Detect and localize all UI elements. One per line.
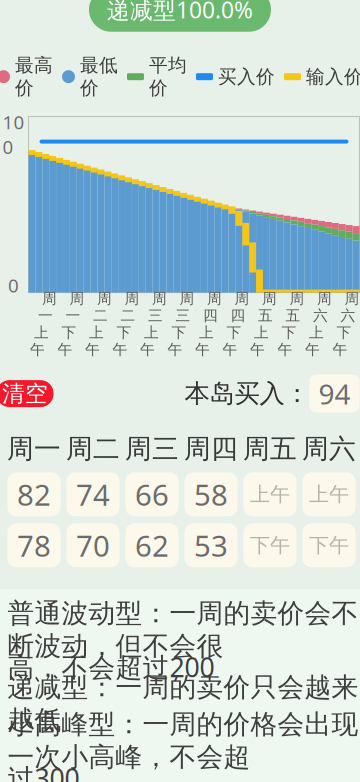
staticText: 午 (140, 341, 155, 359)
staticText: 过300 (7, 760, 79, 782)
staticText: 上午 (309, 482, 349, 507)
staticText: 周五 (243, 433, 297, 465)
staticText: 100 (2, 110, 24, 159)
staticText: 六 (313, 307, 328, 325)
staticText: 82 (17, 475, 51, 514)
staticText: 上 (34, 324, 49, 342)
staticText: 六 (340, 307, 355, 325)
button[interactable]: 74 (66, 472, 119, 516)
staticText: 清空 (2, 380, 48, 407)
staticText: 94 (318, 375, 350, 412)
staticText: 周二 (66, 433, 120, 465)
staticText: 58 (194, 475, 228, 514)
staticText: 上午 (250, 482, 290, 507)
staticText: 午 (112, 341, 127, 359)
staticText: 一 (65, 307, 80, 325)
button[interactable]: 62 (125, 523, 178, 567)
staticText: 午 (250, 341, 265, 359)
staticText: 下 (171, 324, 186, 342)
staticText: 三 (175, 307, 190, 325)
staticText: 午 (30, 341, 45, 359)
button[interactable]: 53 (184, 523, 237, 567)
staticText: 五 (285, 307, 300, 325)
staticText: 53 (194, 526, 228, 565)
staticText: 上 (199, 324, 214, 342)
staticText: 周 (262, 289, 277, 307)
staticText: 周六 (302, 433, 356, 465)
staticText: 普通波动型：一周的卖价会不断波动，但不会很 (7, 597, 358, 663)
staticText: 二 (93, 307, 108, 325)
staticText: 四 (230, 307, 245, 325)
staticText: 周 (124, 289, 139, 307)
staticText: 四 (203, 307, 218, 325)
staticText: 上 (309, 324, 324, 342)
staticText: 下 (281, 324, 296, 342)
staticText: 下 (226, 324, 241, 342)
staticText: 下午 (309, 533, 349, 558)
staticText: 午 (167, 341, 182, 359)
staticText: 买入价 (218, 65, 275, 88)
button[interactable]: 94 (309, 375, 359, 413)
staticText: 周 (42, 289, 57, 307)
button[interactable]: 78 (7, 523, 60, 567)
staticText: 最低价 (80, 54, 118, 100)
staticText: 本岛买入： (184, 378, 309, 409)
staticText: 周 (234, 289, 249, 307)
staticText: 周三 (125, 433, 179, 465)
staticText: 午 (332, 341, 347, 359)
staticText: 周 (344, 289, 359, 307)
staticText: 午 (85, 341, 100, 359)
staticText: 下午 (250, 533, 290, 558)
staticText: 上 (144, 324, 159, 342)
staticText: 五 (258, 307, 273, 325)
staticText: 周一 (7, 433, 61, 465)
staticText: 三 (148, 307, 163, 325)
staticText: 周 (289, 289, 304, 307)
staticText: 66 (135, 475, 169, 514)
staticText: 高，不会超过200 (7, 649, 214, 685)
staticText: 递减型：一周的卖价只会越来越低 (7, 671, 358, 737)
staticText: 午 (195, 341, 210, 359)
staticText: 午 (57, 341, 72, 359)
button[interactable]: 上午 (302, 472, 355, 516)
staticText: 74 (76, 475, 110, 514)
staticText: 最高价 (15, 54, 53, 100)
button[interactable]: 下午 (302, 523, 355, 567)
staticText: 上 (254, 324, 269, 342)
staticText: 午 (277, 341, 292, 359)
staticText: 0 (8, 273, 19, 298)
button[interactable]: 66 (125, 472, 178, 516)
staticText: 周 (152, 289, 167, 307)
staticText: 62 (135, 526, 169, 565)
staticText: 下 (61, 324, 76, 342)
staticText: 78 (17, 526, 51, 565)
button[interactable]: 清空 (0, 380, 53, 407)
staticText: 输入价 (306, 65, 360, 88)
button[interactable]: 上午 (243, 472, 296, 516)
button[interactable]: 下午 (243, 523, 296, 567)
staticText: 午 (305, 341, 320, 359)
staticText: 递减型100.0% (107, 0, 253, 25)
staticText: 小高峰型：一周的价格会出现一次小高峰，不会超 (7, 708, 358, 774)
staticText: 70 (76, 526, 110, 565)
staticText: 周 (179, 289, 194, 307)
staticText: 周 (97, 289, 112, 307)
staticText: 周 (317, 289, 332, 307)
staticText: 周四 (184, 433, 238, 465)
staticText: 周 (69, 289, 84, 307)
staticText: 上 (89, 324, 104, 342)
staticText: 下 (336, 324, 351, 342)
button[interactable]: 82 (7, 472, 60, 516)
button[interactable]: 70 (66, 523, 119, 567)
staticText: 午 (222, 341, 237, 359)
button[interactable]: 58 (184, 472, 237, 516)
staticText: 一 (38, 307, 53, 325)
staticText: 二 (120, 307, 135, 325)
staticText: 平均价 (149, 54, 187, 100)
staticText: 周 (207, 289, 222, 307)
staticText: 下 (116, 324, 131, 342)
